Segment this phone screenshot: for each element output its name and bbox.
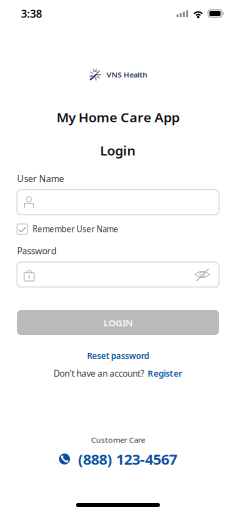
staticText: My Home Care App [56, 108, 179, 126]
staticText: (888) 123-4567 [78, 449, 177, 469]
staticText: 3:38 [21, 6, 42, 21]
staticText: User Name [17, 172, 64, 185]
staticText: LOGIN [103, 316, 132, 329]
staticText: VNS Health [106, 69, 147, 80]
staticText: Register [147, 367, 182, 379]
staticText: Don't have an account? [53, 367, 144, 379]
button[interactable]: LOGIN [17, 310, 219, 335]
button[interactable]: Show password [194, 267, 210, 281]
staticText: Reset password [87, 350, 149, 361]
staticText: Login [100, 141, 136, 159]
staticText: Remember User Name [32, 224, 118, 235]
button[interactable]: User Name [17, 190, 219, 215]
button[interactable]: Register [147, 367, 182, 379]
button[interactable]: Remember User Name [17, 224, 219, 235]
button[interactable]: (888) 123-4567 [59, 449, 177, 469]
staticText: Customer Care [91, 434, 145, 445]
button[interactable]: Reset password [87, 350, 149, 361]
staticText: Password [17, 245, 57, 257]
